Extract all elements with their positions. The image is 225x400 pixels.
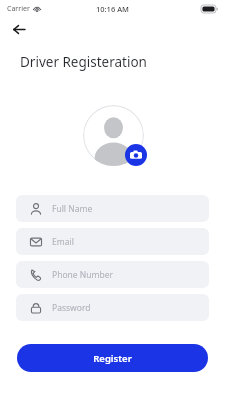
button[interactable]: Register	[17, 344, 208, 372]
staticText: Carrier	[7, 4, 30, 14]
button[interactable]: Phone Number	[16, 261, 209, 288]
button[interactable]: Back	[8, 18, 30, 40]
button[interactable]: Email	[16, 228, 209, 255]
staticText: Email	[52, 236, 74, 248]
button[interactable]: Full Name	[16, 195, 209, 222]
button[interactable]: Password	[16, 294, 209, 321]
staticText: Password	[52, 302, 91, 314]
staticText: 10:16 AM	[96, 4, 129, 14]
staticText: Driver Registeration	[20, 53, 147, 71]
staticText: Register	[93, 352, 132, 365]
staticText: Full Name	[52, 203, 93, 215]
button[interactable]: Change photo	[125, 144, 147, 166]
staticText: Phone Number	[52, 269, 113, 281]
